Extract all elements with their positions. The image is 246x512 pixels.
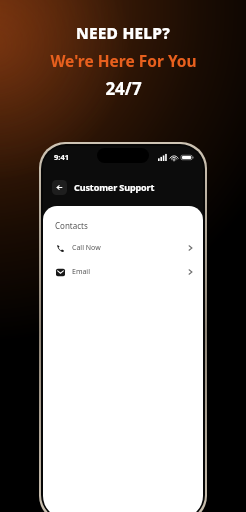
staticText: Email (72, 267, 90, 277)
staticText: 24/7 (105, 77, 142, 100)
staticText: NEED HELP? (76, 22, 170, 43)
staticText: 9:41 (54, 152, 69, 162)
button[interactable]: Back (52, 180, 67, 195)
staticText: Customer Support (74, 181, 155, 193)
staticText: Call Now (72, 243, 101, 253)
staticText: Contacts (55, 220, 88, 231)
button[interactable]: Call Now (55, 240, 193, 255)
staticText: We're Here For You (50, 50, 197, 71)
button[interactable]: Email (55, 264, 193, 279)
